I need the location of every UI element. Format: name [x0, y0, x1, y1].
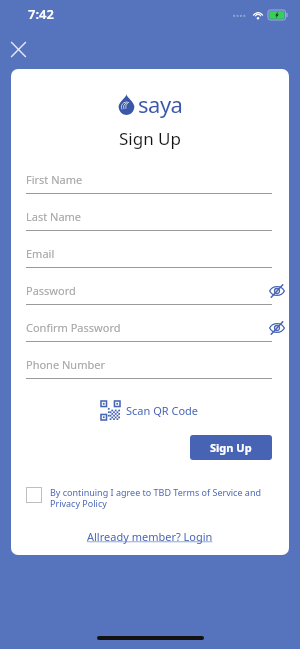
button[interactable]: Last Name — [26, 206, 272, 243]
staticText: Password — [26, 283, 76, 298]
staticText: Phone Number — [26, 357, 105, 372]
button[interactable]: Toggle password visibility — [267, 281, 287, 301]
staticText: Last Name — [26, 209, 82, 224]
button[interactable]: Allready member? Login — [81, 527, 219, 546]
staticText: By continuing I agree to TBD Terms of Se… — [50, 486, 275, 510]
staticText: Sign Up — [11, 127, 289, 150]
staticText: Email — [26, 246, 55, 261]
staticText: First Name — [26, 172, 83, 187]
button[interactable]: Toggle password visibility — [267, 318, 287, 338]
button[interactable]: Password — [26, 280, 272, 317]
staticText: 7:42 — [28, 5, 54, 23]
button[interactable]: First Name — [26, 169, 272, 206]
button[interactable]: Phone Number — [26, 354, 272, 391]
button[interactable]: By continuing I agree to TBD Terms of Se… — [11, 486, 289, 510]
staticText: Confirm Password — [26, 320, 121, 335]
staticText: saya — [138, 89, 183, 119]
button[interactable]: Scan QR Code — [97, 399, 203, 422]
button[interactable]: Confirm Password — [26, 317, 272, 354]
button[interactable]: Close — [7, 38, 30, 61]
button[interactable]: Sign Up — [190, 435, 272, 460]
staticText: Sign Up — [210, 440, 252, 455]
staticText: Scan QR Code — [126, 403, 199, 418]
button[interactable]: Email — [26, 243, 272, 280]
